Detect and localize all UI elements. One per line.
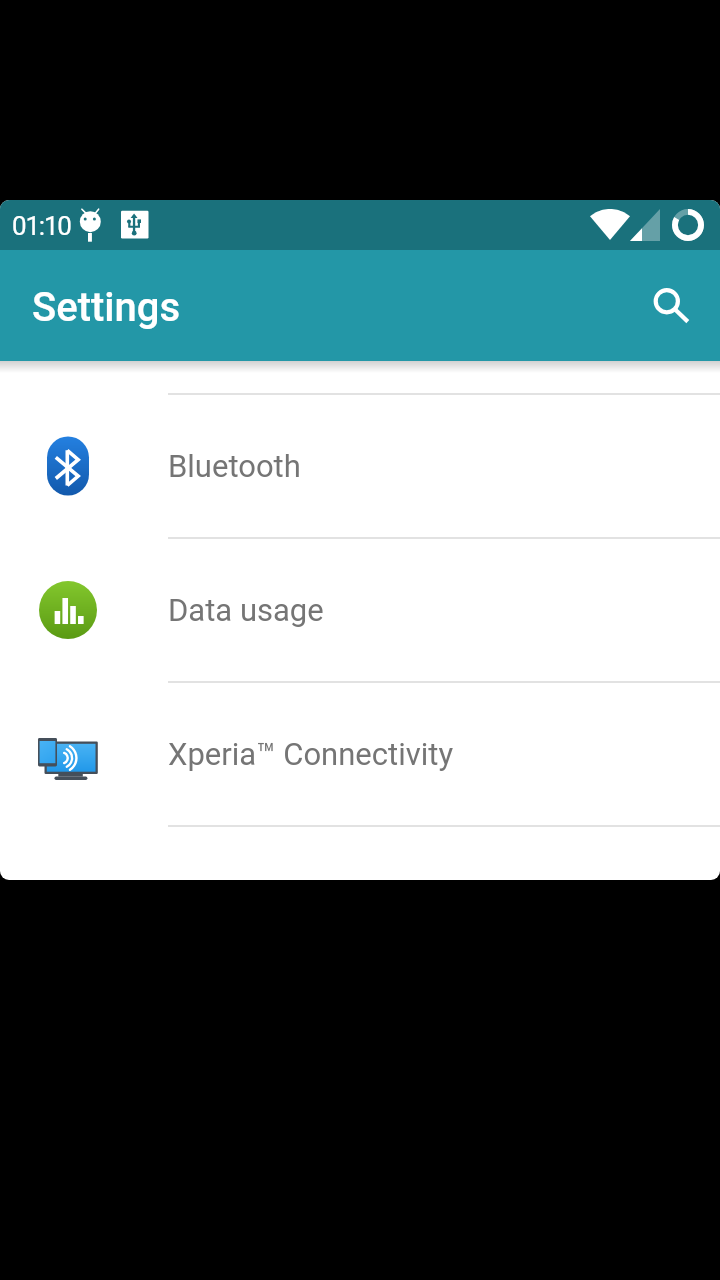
button[interactable]: Data usage bbox=[0, 539, 720, 681]
button[interactable]: Search bbox=[625, 261, 713, 349]
staticText: Settings bbox=[32, 284, 181, 331]
button[interactable]: Bluetooth bbox=[0, 395, 720, 537]
staticText: Bluetooth bbox=[168, 448, 301, 484]
staticText: Data usage bbox=[168, 592, 324, 628]
staticText: 01:10 bbox=[12, 211, 71, 241]
button[interactable]: Xperia™ Connectivity bbox=[0, 683, 720, 825]
staticText: Xperia™ Connectivity bbox=[168, 736, 454, 772]
